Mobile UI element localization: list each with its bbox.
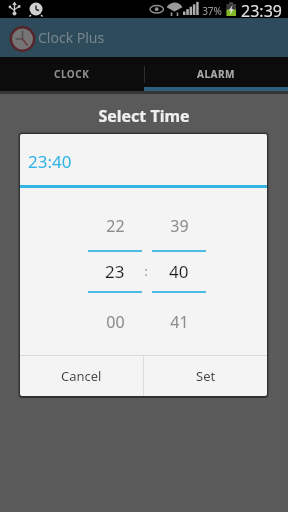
staticText: CLOCK	[54, 67, 90, 81]
button[interactable]: 23	[88, 252, 142, 291]
staticText: Clock Plus	[38, 28, 105, 47]
staticText: 23:39	[241, 0, 282, 22]
button[interactable]: Cancel	[20, 356, 143, 396]
staticText: 22	[106, 215, 125, 237]
staticText: Set	[196, 367, 216, 385]
staticText: 41	[170, 311, 189, 333]
staticText: ALARM	[197, 67, 235, 81]
staticText: 39	[170, 215, 189, 237]
staticText: 00	[106, 311, 125, 333]
staticText: 37%	[202, 4, 222, 18]
staticText: 23	[105, 260, 125, 283]
button[interactable]: 40	[152, 252, 206, 291]
button[interactable]: CLOCK	[0, 57, 144, 91]
staticText: :	[144, 263, 148, 279]
staticText: 23:40	[28, 150, 72, 173]
staticText: 40	[169, 260, 189, 283]
button[interactable]: Set	[144, 356, 267, 396]
staticText: Cancel	[61, 367, 102, 385]
button[interactable]: ALARM	[144, 57, 288, 91]
staticText: Select Time	[98, 105, 190, 127]
